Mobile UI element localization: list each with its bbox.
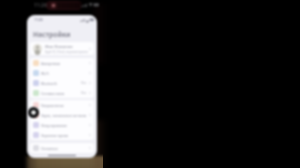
staticText: Уведомления <box>41 103 64 108</box>
button[interactable]: Уведомления <box>30 100 94 110</box>
staticText: Вкл. <box>81 81 88 85</box>
button[interactable]: Сотовая связь <box>30 88 94 98</box>
button[interactable]: Основные <box>30 143 94 153</box>
staticText: Основные <box>41 146 58 151</box>
button[interactable]: Wi-Fi <box>30 68 94 78</box>
button[interactable]: Звуки, тактильные сигналы <box>30 110 94 120</box>
button[interactable]: Имя Фамилия <box>30 42 94 55</box>
staticText: Настройки <box>33 30 71 39</box>
staticText: Apple ID, iCloud, медиаматериалы <box>45 50 88 54</box>
staticText: Экранное время <box>41 133 69 138</box>
button[interactable]: Авиарежим <box>30 58 94 68</box>
button[interactable]: Экранное время <box>30 130 94 140</box>
button[interactable]: Фокусирование <box>30 120 94 130</box>
staticText: Авиарежим <box>41 61 61 66</box>
staticText: Bluetooth <box>41 81 57 86</box>
staticText: Wi-Fi <box>41 71 49 76</box>
staticText: 11:26 <box>34 2 47 9</box>
other: Touch point <box>28 107 39 118</box>
staticText: Имя Фамилия <box>45 44 73 49</box>
staticText: Сотовая связь <box>41 91 65 96</box>
staticText: Фокусирование <box>41 123 67 128</box>
staticText: Звуки, тактильные сигналы <box>41 113 87 118</box>
staticText: 11:26 <box>34 17 43 22</box>
button[interactable]: Bluetooth <box>30 78 94 88</box>
staticText: Вкл. <box>81 91 88 95</box>
